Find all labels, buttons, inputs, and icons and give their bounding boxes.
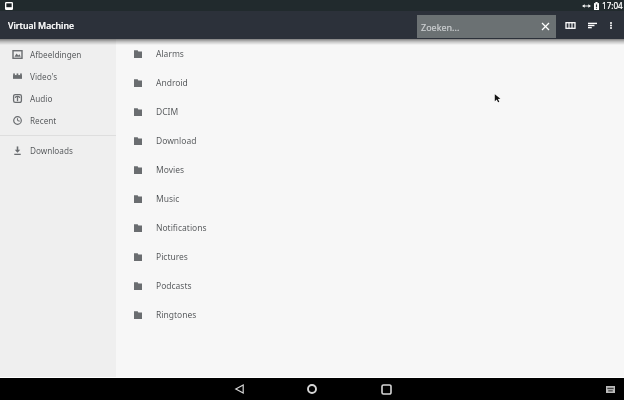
- button[interactable]: More options: [603, 11, 619, 39]
- button[interactable]: Video's: [0, 65, 116, 87]
- staticText: Afbeeldingen: [30, 49, 82, 60]
- staticText: Podcasts: [156, 280, 192, 292]
- button[interactable]: Sort: [583, 11, 601, 39]
- staticText: 17:04: [602, 0, 623, 11]
- button[interactable]: Audio: [0, 87, 116, 109]
- button[interactable]: Screenshot: [606, 386, 615, 393]
- staticText: Zoeken...: [421, 21, 460, 33]
- button[interactable]: Home: [301, 378, 323, 400]
- button[interactable]: Movies: [116, 155, 624, 184]
- button[interactable]: Notifications: [116, 213, 624, 242]
- button[interactable]: DCIM: [116, 97, 624, 126]
- staticText: Movies: [156, 164, 185, 176]
- button[interactable]: Afbeeldingen: [0, 43, 116, 65]
- button[interactable]: Downloads: [0, 139, 116, 161]
- button[interactable]: Zoeken...: [417, 15, 556, 38]
- staticText: Downloads: [30, 145, 73, 156]
- button[interactable]: Recent: [0, 109, 116, 131]
- button[interactable]: Grid view: [561, 11, 579, 39]
- staticText: Audio: [30, 93, 53, 104]
- button[interactable]: Recents: [375, 378, 397, 400]
- staticText: Recent: [30, 115, 57, 126]
- staticText: Android: [156, 77, 188, 89]
- staticText: Download: [156, 135, 197, 147]
- button[interactable]: Back: [228, 378, 250, 400]
- staticText: Video's: [30, 71, 58, 82]
- staticText: Virtual Machine: [8, 20, 74, 32]
- staticText: Alarms: [156, 48, 184, 60]
- button[interactable]: Alarms: [116, 39, 624, 68]
- button[interactable]: Clear search: [534, 15, 556, 38]
- button[interactable]: Android: [116, 68, 624, 97]
- staticText: DCIM: [156, 106, 179, 118]
- button[interactable]: Pictures: [116, 242, 624, 271]
- button[interactable]: Download: [116, 126, 624, 155]
- button[interactable]: Music: [116, 184, 624, 213]
- button[interactable]: Ringtones: [116, 300, 624, 329]
- button[interactable]: Podcasts: [116, 271, 624, 300]
- staticText: Notifications: [156, 222, 207, 234]
- staticText: Ringtones: [156, 309, 197, 321]
- staticText: Pictures: [156, 251, 188, 263]
- staticText: Music: [156, 193, 180, 205]
